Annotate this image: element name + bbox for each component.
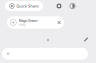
button[interactable]: Quick Share — [20, 4, 96, 44]
